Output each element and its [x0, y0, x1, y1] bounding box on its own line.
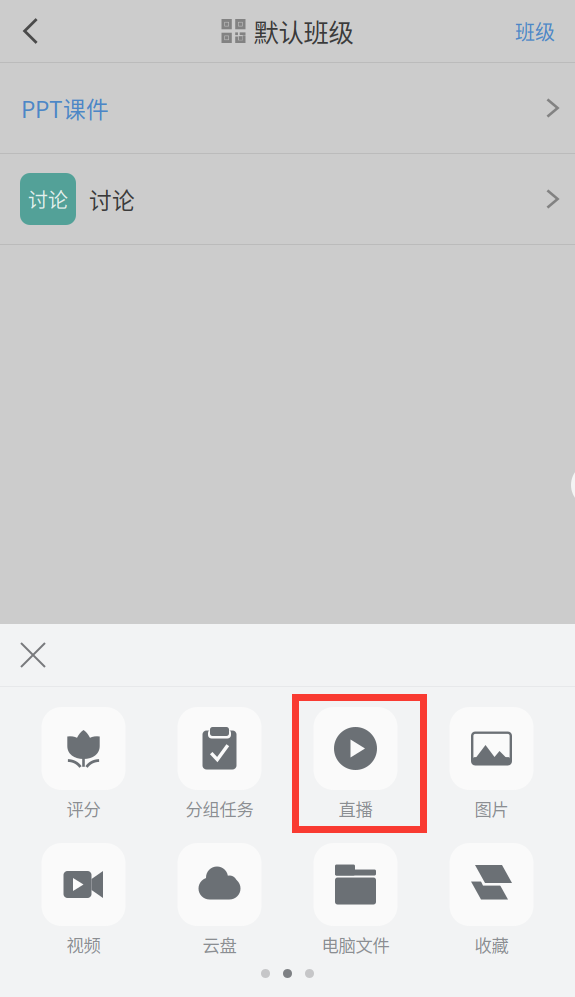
button[interactable]: 分组任务 [151, 707, 287, 820]
button[interactable]: 班级 [495, 0, 575, 62]
button[interactable]: Back [0, 0, 61, 62]
button[interactable]: 电脑文件 [287, 843, 423, 956]
button[interactable]: PPT课件 [0, 63, 575, 153]
staticText: 电脑文件 [321, 932, 389, 957]
button[interactable]: 收藏 [423, 843, 559, 956]
staticText: 收藏 [474, 932, 508, 957]
staticText: 班级 [515, 16, 555, 45]
button[interactable]: 云盘 [151, 843, 287, 956]
button[interactable]: 视频 [15, 843, 151, 956]
staticText: 讨论 [28, 184, 68, 213]
staticText: 讨论 [89, 183, 135, 215]
staticText: 默认班级 [253, 13, 353, 49]
button[interactable]: 评分 [15, 707, 151, 820]
staticText: 评分 [66, 796, 100, 821]
staticText: PPT课件 [21, 92, 109, 124]
staticText: 视频 [66, 932, 100, 957]
staticText: 云盘 [202, 932, 236, 957]
button[interactable]: 图片 [423, 707, 559, 820]
button[interactable]: 直播 [287, 707, 423, 820]
button[interactable]: Close [0, 624, 66, 686]
button[interactable]: 讨论 [0, 154, 575, 244]
staticText: 分组任务 [185, 796, 253, 821]
staticText: 直播 [338, 796, 372, 821]
staticText: 图片 [474, 796, 508, 821]
